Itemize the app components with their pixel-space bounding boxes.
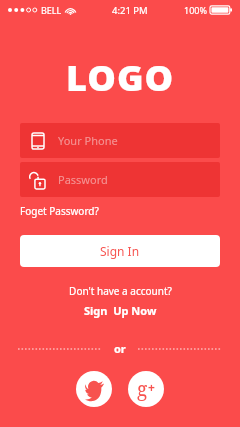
staticText: BELL — [41, 4, 62, 16]
button[interactable]: Foget Password? — [18, 202, 101, 220]
staticText: Don't have a account? — [69, 284, 172, 298]
button[interactable]: Sign In — [20, 235, 220, 267]
staticText: or — [114, 341, 126, 356]
staticText: + — [148, 379, 155, 395]
button[interactable]: Sign in with Twitter — [76, 371, 112, 407]
button[interactable]: Your Phone — [20, 123, 220, 158]
staticText: Sign In — [100, 243, 140, 259]
staticText: Sign Up Now — [84, 303, 157, 318]
button[interactable]: Password — [20, 162, 220, 197]
staticText: 100% — [184, 4, 207, 16]
staticText: LOGO — [66, 53, 175, 102]
staticText: Your Phone — [58, 133, 118, 148]
staticText: 4:21 PM — [112, 4, 148, 17]
button[interactable]: Sign Up Now — [80, 302, 161, 319]
staticText: Password — [58, 172, 108, 187]
staticText: g — [137, 376, 148, 402]
button[interactable]: Sign in with Google Plus — [128, 371, 164, 407]
staticText: Foget Password? — [20, 204, 99, 218]
